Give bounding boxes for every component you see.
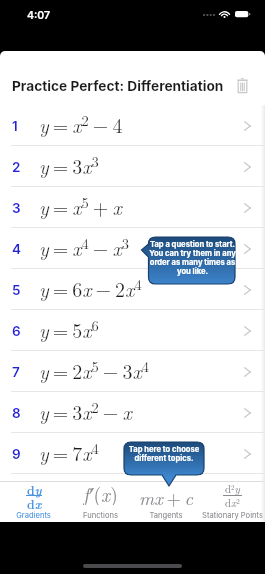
staticText: y = x4 − x3 [39,233,129,262]
staticText: 8 [12,405,21,421]
button[interactable]: d2y [199,482,265,507]
staticText: f′(x) [83,480,118,505]
button[interactable]: 7 [0,351,265,392]
button[interactable]: 6 [0,310,265,351]
staticText: 9 [12,446,21,462]
staticText: y = 7x4 [39,438,99,467]
staticText: dy [27,481,42,498]
staticText: 6 [12,323,21,339]
staticText: 4 [12,241,21,257]
staticText: y = 3x2 − x [39,397,132,426]
staticText: 7 [12,364,20,380]
staticText: Tap here to choose different topics. [124,445,204,463]
button[interactable]: 2 [0,146,265,187]
staticText: y = x2 − 4 [39,110,123,139]
staticText: d2y [225,481,240,497]
staticText: Stationary Points [202,511,263,520]
staticText: 2 [12,159,21,175]
button[interactable]: f′(x) [67,482,133,507]
staticText: mx + c [139,484,194,509]
staticText: Functions [83,511,118,520]
staticText: 3 [12,200,21,216]
button[interactable]: dy [0,482,67,507]
button[interactable]: Delete [228,71,256,99]
button[interactable]: 4 [0,228,265,269]
staticText: y = 3x3 [39,151,99,180]
button[interactable]: 5 [0,269,265,310]
button[interactable]: 3 [0,187,265,228]
staticText: dx [27,495,42,512]
button[interactable]: mx + c [133,482,199,507]
staticText: y = 6x − 2x4 [39,274,142,303]
staticText: dx2 [225,495,240,511]
staticText: 1 [12,118,18,134]
staticText: Practice Perfect: Differentiation [12,78,224,95]
staticText: y = x5 + x [39,192,122,221]
staticText: 5 [12,282,21,298]
button[interactable]: 9 [0,433,265,474]
staticText: Tap a question to start. You can try the… [149,240,236,276]
staticText: y = 2x5 − 3x4 [39,356,149,385]
staticText: Tangents [149,511,183,520]
button[interactable]: 8 [0,392,265,433]
staticText: y = 5x6 [39,315,99,344]
staticText: 4:07 [27,9,51,22]
button[interactable]: 1 [0,105,265,146]
staticText: Gradients [16,511,51,520]
